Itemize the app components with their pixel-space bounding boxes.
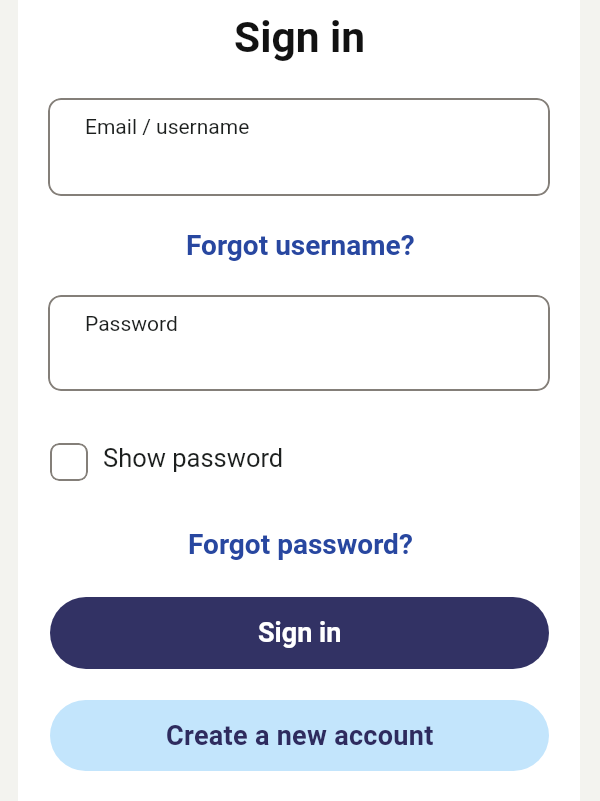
staticText: Email / username xyxy=(85,115,250,140)
staticText: Sign in xyxy=(258,617,342,649)
button[interactable]: Email / username xyxy=(48,98,550,196)
staticText: Sign in xyxy=(234,13,366,63)
button[interactable]: Sign in xyxy=(50,597,549,669)
button[interactable]: Forgot password? xyxy=(188,528,413,561)
button[interactable]: Create a new account xyxy=(50,700,549,771)
button[interactable]: Forgot username? xyxy=(186,229,415,262)
staticText: Show password xyxy=(103,443,284,473)
button[interactable]: Show password xyxy=(50,440,290,482)
staticText: Password xyxy=(85,312,178,337)
staticText: Create a new account xyxy=(166,720,434,752)
button[interactable]: Password xyxy=(48,295,550,391)
